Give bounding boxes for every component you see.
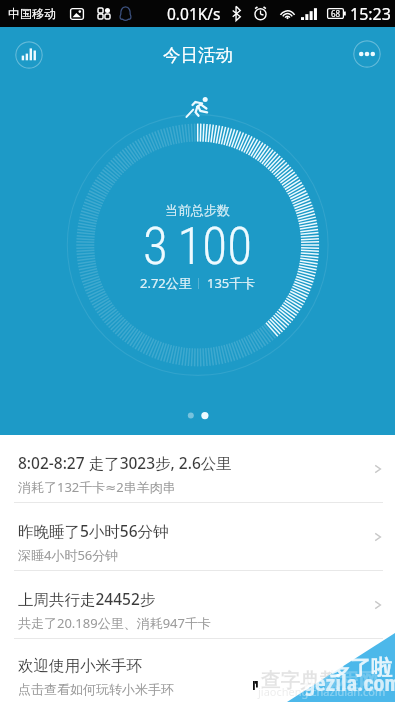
button[interactable]: Statistics [15,41,43,69]
staticText: jiaocheng.chazidian.com [258,684,386,699]
staticText: 共走了20.189公里、消耗947千卡 [18,614,211,632]
staticText: 上周共行走24452步 [18,588,156,609]
staticText: 中国移动 [8,6,56,21]
staticText: 0.01K/s [167,3,221,24]
staticText: 多了啦 [329,655,392,681]
staticText: 昨晚睡了5小时56分钟 [18,520,169,541]
button[interactable]: More options [353,40,381,68]
staticText: 68 [331,8,341,19]
staticText: 点击查看如何玩转小米手环 [18,681,174,697]
staticText: 15:23 [350,3,391,25]
staticText: 欢迎使用小米手环 [18,656,142,676]
staticText: 3 100 [143,217,252,277]
staticText: 查字典教程网 [261,668,378,693]
staticText: 8:02-8:27 走了3023步, 2.6公里 [18,452,232,473]
button[interactable]: 昨晚睡了5小时56分钟 [0,503,395,570]
staticText: 2.72公里 [140,274,192,292]
staticText: 135千卡 [207,274,256,292]
staticText: 查字典教程网 [261,668,378,693]
button[interactable]: 8:02-8:27 走了3023步, 2.6公里 [0,435,395,502]
button[interactable]: 上周共行走24452步 [0,571,395,638]
staticText: 今日活动 [163,44,233,66]
button[interactable]: 欢迎使用小米手环 [0,639,395,702]
staticText: 消耗了132千卡≈2串羊肉串 [18,478,176,496]
staticText: 当前总步数 [165,202,230,218]
staticText: jiaocheng.chazidian.com [258,684,386,699]
staticText: 深睡4小时56分钟 [18,546,119,564]
staticText: gezila.com [304,671,395,697]
